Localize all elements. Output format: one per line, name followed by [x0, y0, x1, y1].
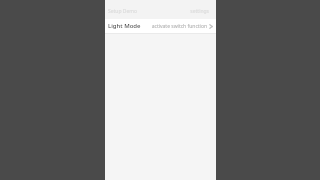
staticText: activate switch function — [151, 23, 207, 30]
button[interactable]: Light Mode — [105, 19, 216, 33]
staticText: Light Mode — [108, 22, 141, 30]
staticText: Setup Demo — [108, 8, 138, 15]
staticText: settings — [190, 8, 209, 15]
other: Open Light Mode options — [209, 23, 213, 30]
